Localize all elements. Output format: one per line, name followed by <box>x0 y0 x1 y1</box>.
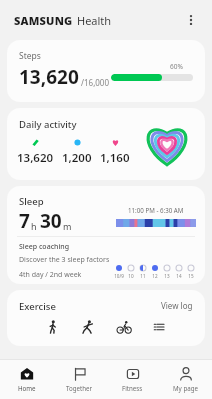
staticText: My page <box>173 384 198 392</box>
staticText: 7 <box>19 208 30 234</box>
staticText: /16,000 <box>81 77 109 88</box>
staticText: 13,620 <box>17 150 54 166</box>
staticText: Fitness <box>122 384 143 392</box>
button[interactable]: Running <box>77 316 99 338</box>
staticText: Steps <box>19 50 41 62</box>
staticText: 14 <box>176 273 182 279</box>
staticText: 1,200 <box>62 150 92 166</box>
staticText: Together <box>66 384 93 392</box>
button[interactable]: More exercises <box>148 316 170 338</box>
staticText: Sleep coaching <box>19 242 70 252</box>
staticText: Sleep <box>19 195 44 208</box>
button[interactable]: View log <box>157 295 197 316</box>
staticText: 15 <box>188 273 194 279</box>
staticText: Health <box>77 13 112 28</box>
staticText: 11:00 PM - 6:30 AM <box>128 206 184 214</box>
staticText: 30 <box>40 208 62 234</box>
staticText: 12 <box>152 273 158 279</box>
staticText: 4th day / 2nd week <box>19 270 82 280</box>
staticText: View log <box>161 300 193 311</box>
staticText: Daily activity <box>19 118 77 131</box>
staticText: 11 <box>140 273 146 279</box>
button[interactable]: More options <box>178 7 204 33</box>
staticText: 13,620 <box>19 64 79 90</box>
staticText: 13 <box>164 273 170 279</box>
button[interactable]: Walking <box>42 316 64 338</box>
button[interactable]: Home <box>0 360 53 399</box>
button[interactable]: Fitness <box>106 360 159 399</box>
button[interactable]: My page <box>159 360 212 399</box>
button[interactable]: Exercise <box>7 290 205 346</box>
staticText: m <box>63 220 72 232</box>
staticText: 10 <box>128 273 134 279</box>
staticText: Discover the 3 sleep factors <box>19 255 110 265</box>
staticText: h <box>31 220 37 232</box>
staticText: 60% <box>170 62 183 71</box>
staticText: 10/9 <box>114 273 124 279</box>
button[interactable]: Daily activity <box>7 108 205 180</box>
button[interactable]: Together <box>53 360 106 399</box>
staticText: Home <box>18 384 36 392</box>
button[interactable]: Sleep <box>7 186 205 284</box>
staticText: 1,160 <box>100 150 130 166</box>
staticText: SAMSUNG <box>14 13 73 28</box>
button[interactable]: Cycling <box>113 316 135 338</box>
button[interactable]: Steps <box>7 40 205 102</box>
staticText: Exercise <box>19 300 56 313</box>
